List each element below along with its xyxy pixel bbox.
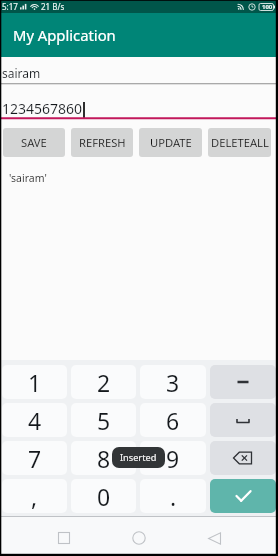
button[interactable]: Minus — [210, 365, 276, 399]
staticText: UPDATE — [150, 135, 192, 150]
staticText: 2 — [97, 367, 111, 398]
button[interactable]: Backspace — [210, 441, 276, 475]
staticText: Inserted — [120, 451, 157, 464]
staticText: 9 — [166, 443, 180, 474]
staticText: 21 B/s — [41, 1, 65, 12]
staticText: 3 — [166, 367, 180, 398]
button[interactable]: REFRESH — [71, 128, 133, 157]
button[interactable]: . — [140, 479, 206, 513]
button[interactable]: Recents — [39, 516, 89, 556]
staticText: REFRESH — [79, 135, 126, 150]
button[interactable]: Space — [210, 403, 276, 437]
button[interactable]: Enter — [210, 479, 276, 513]
button[interactable]: 2 — [71, 365, 136, 399]
button[interactable]: 3 — [140, 365, 206, 399]
button[interactable]: 6 — [140, 403, 206, 437]
staticText: 100 — [262, 3, 273, 11]
staticText: 0 — [97, 481, 111, 512]
staticText: 7 — [28, 443, 42, 474]
button[interactable]: , — [2, 479, 67, 513]
button[interactable]: 0 — [71, 479, 136, 513]
button[interactable]: DELETEALL — [208, 128, 271, 157]
button[interactable]: 4 — [2, 403, 67, 437]
staticText: , — [31, 481, 38, 512]
staticText: 6 — [166, 405, 180, 436]
button[interactable]: Back — [189, 516, 239, 556]
button[interactable]: 9 — [140, 441, 206, 475]
staticText: sairam — [2, 65, 41, 81]
button[interactable]: 7 — [2, 441, 67, 475]
staticText: 8 — [97, 443, 111, 474]
staticText: 5 — [97, 405, 111, 436]
button[interactable]: 8 — [71, 441, 136, 475]
staticText: 5:17 — [2, 1, 18, 12]
button[interactable]: UPDATE — [139, 128, 202, 157]
staticText: 1 — [28, 367, 42, 398]
button[interactable]: Home — [114, 516, 164, 556]
button[interactable]: 5 — [71, 403, 136, 437]
staticText: DELETEALL — [211, 135, 269, 150]
staticText: 'sairam' — [9, 171, 47, 185]
staticText: 1234567860 — [2, 99, 83, 118]
button[interactable]: SAVE — [3, 128, 65, 157]
staticText: . — [170, 481, 177, 512]
staticText: My Application — [13, 25, 116, 45]
button[interactable]: 1 — [2, 365, 67, 399]
staticText: SAVE — [21, 135, 47, 150]
staticText: 4 — [28, 405, 42, 436]
